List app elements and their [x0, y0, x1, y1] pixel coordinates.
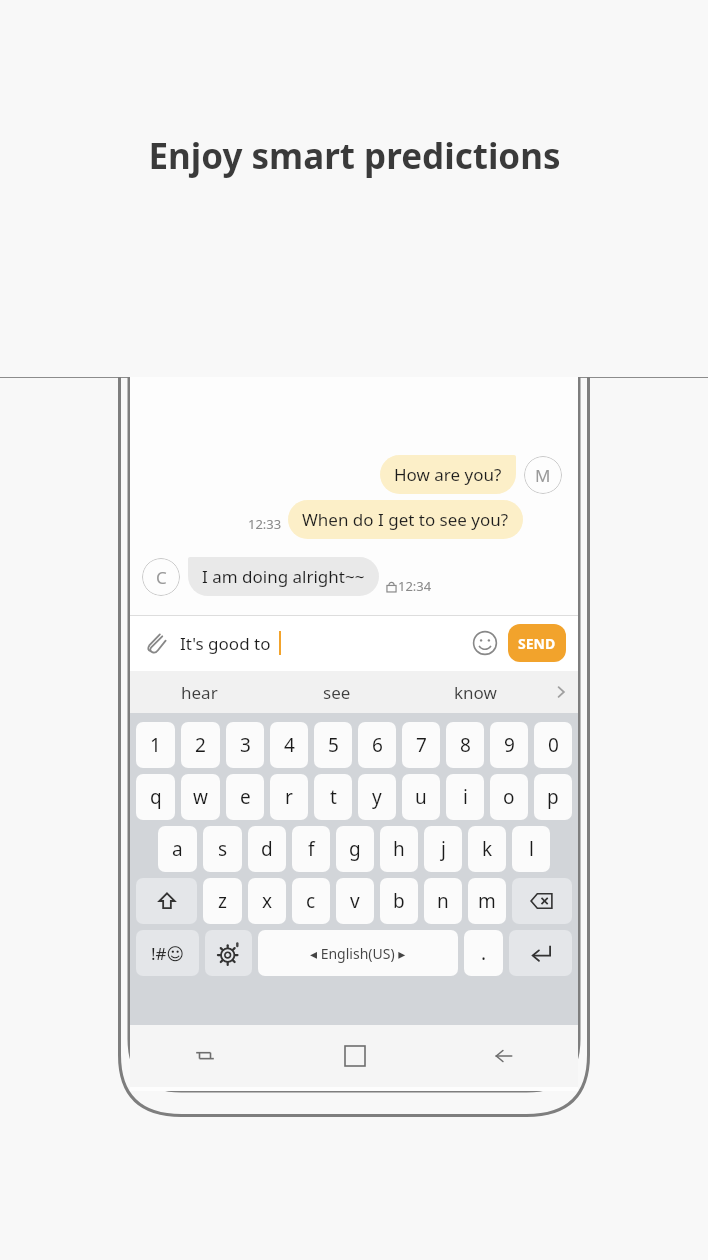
- button[interactable]: c: [292, 878, 330, 924]
- staticText: l: [529, 836, 534, 862]
- staticText: f: [308, 836, 315, 862]
- button[interactable]: k: [468, 826, 506, 872]
- button[interactable]: j: [424, 826, 462, 872]
- button[interactable]: 3: [226, 722, 264, 768]
- button[interactable]: ◂ English(US) ▸: [258, 930, 458, 976]
- button[interactable]: .: [464, 930, 503, 976]
- button[interactable]: z: [203, 878, 242, 924]
- staticText: t: [330, 784, 337, 810]
- button[interactable]: How are you?: [380, 455, 516, 494]
- staticText: i: [463, 784, 468, 810]
- button[interactable]: v: [336, 878, 374, 924]
- button[interactable]: w: [181, 774, 220, 820]
- button[interactable]: 1: [136, 722, 175, 768]
- button[interactable]: key: [512, 878, 572, 924]
- staticText: I am doing alright~~: [202, 565, 365, 588]
- staticText: r: [285, 784, 293, 810]
- button[interactable]: 2: [181, 722, 220, 768]
- staticText: How are you?: [394, 463, 502, 486]
- staticText: p: [547, 784, 559, 810]
- button[interactable]: know: [406, 671, 544, 713]
- staticText: x: [262, 888, 273, 914]
- staticText: m: [478, 888, 496, 914]
- button[interactable]: SEND: [508, 624, 566, 662]
- button[interactable]: Emoji: [468, 626, 502, 660]
- staticText: b: [393, 888, 405, 914]
- button[interactable]: q: [136, 774, 175, 820]
- button[interactable]: b: [380, 878, 418, 924]
- button[interactable]: I am doing alright~~: [188, 557, 379, 596]
- button[interactable]: m: [468, 878, 506, 924]
- staticText: d: [261, 836, 273, 862]
- button[interactable]: y: [358, 774, 396, 820]
- button[interactable]: i: [446, 774, 484, 820]
- staticText: 2: [195, 732, 206, 758]
- staticText: C: [156, 566, 167, 589]
- button[interactable]: 0: [534, 722, 572, 768]
- staticText: hear: [181, 681, 218, 704]
- button[interactable]: When do I get to see you?: [288, 500, 523, 539]
- button[interactable]: 6: [358, 722, 396, 768]
- button[interactable]: More predictions: [544, 671, 578, 713]
- staticText: w: [193, 784, 208, 810]
- staticText: .: [481, 940, 487, 966]
- staticText: j: [441, 836, 446, 862]
- button[interactable]: 7: [402, 722, 440, 768]
- staticText: 6: [372, 732, 383, 758]
- button[interactable]: o: [490, 774, 528, 820]
- staticText: 12:33: [248, 515, 282, 533]
- button[interactable]: Recents: [130, 1025, 280, 1087]
- button[interactable]: x: [248, 878, 286, 924]
- button[interactable]: h: [380, 826, 418, 872]
- staticText: 3: [240, 732, 251, 758]
- button[interactable]: 5: [314, 722, 352, 768]
- button[interactable]: s: [203, 826, 242, 872]
- button[interactable]: Attach: [142, 628, 172, 658]
- staticText: y: [372, 784, 382, 810]
- staticText: g: [349, 836, 361, 862]
- button[interactable]: a: [158, 826, 197, 872]
- button[interactable]: key: [136, 878, 197, 924]
- button[interactable]: 4: [270, 722, 308, 768]
- button[interactable]: 8: [446, 722, 484, 768]
- staticText: M: [535, 464, 551, 487]
- button[interactable]: key: [509, 930, 572, 976]
- button[interactable]: M: [524, 456, 562, 494]
- staticText: a: [172, 836, 183, 862]
- button[interactable]: d: [248, 826, 286, 872]
- staticText: It's good to: [180, 632, 271, 655]
- button[interactable]: hear: [130, 671, 268, 713]
- button[interactable]: g: [336, 826, 374, 872]
- staticText: u: [415, 784, 427, 810]
- button[interactable]: u: [402, 774, 440, 820]
- staticText: e: [240, 784, 251, 810]
- button[interactable]: key: [205, 930, 252, 976]
- button[interactable]: l: [512, 826, 550, 872]
- button[interactable]: e: [226, 774, 264, 820]
- button[interactable]: r: [270, 774, 308, 820]
- button[interactable]: f: [292, 826, 330, 872]
- staticText: v: [350, 888, 360, 914]
- staticText: 4: [284, 732, 295, 758]
- button[interactable]: t: [314, 774, 352, 820]
- staticText: n: [437, 888, 449, 914]
- button[interactable]: Home: [280, 1025, 429, 1087]
- button[interactable]: p: [534, 774, 572, 820]
- staticText: h: [393, 836, 405, 862]
- staticText: SEND: [518, 634, 556, 653]
- staticText: see: [323, 681, 351, 704]
- staticText: Enjoy smart predictions: [148, 132, 561, 180]
- staticText: 1: [150, 732, 161, 758]
- button[interactable]: 9: [490, 722, 528, 768]
- button[interactable]: Back: [429, 1025, 578, 1087]
- button[interactable]: C: [142, 558, 180, 596]
- staticText: !#☺: [151, 942, 185, 965]
- button[interactable]: see: [268, 671, 406, 713]
- staticText: c: [306, 888, 316, 914]
- staticText: 9: [504, 732, 515, 758]
- staticText: 7: [416, 732, 427, 758]
- staticText: o: [503, 784, 515, 810]
- button[interactable]: n: [424, 878, 462, 924]
- staticText: 12:34: [398, 577, 432, 595]
- button[interactable]: key: [136, 930, 199, 976]
